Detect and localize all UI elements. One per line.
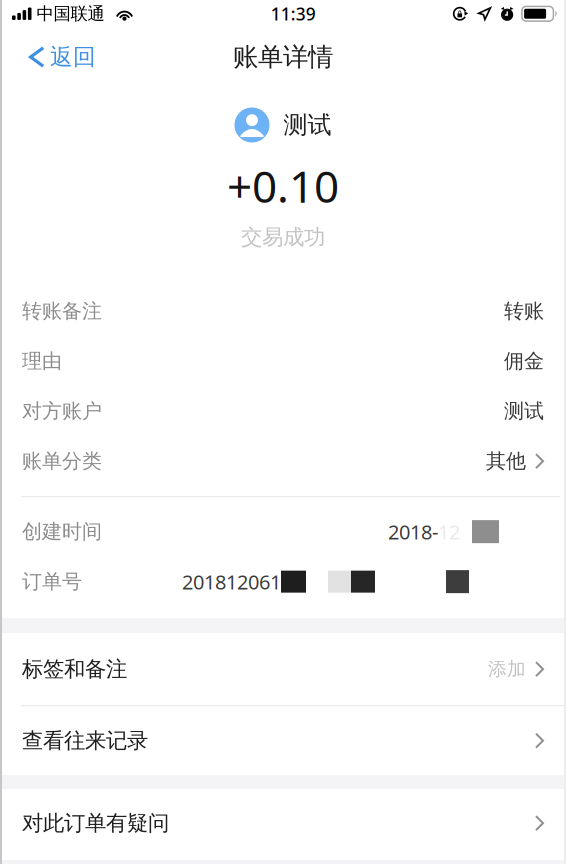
staticText: 对此订单有疑问 [22,810,169,836]
button[interactable]: 查看往来记录 [0,706,566,775]
button[interactable]: 标签和备注 [0,633,566,705]
button[interactable]: 返回 [0,35,110,79]
staticText: 12 [438,518,460,545]
staticText: 测试 [283,110,331,140]
staticText: 标签和备注 [22,656,127,682]
staticText: 订单号 [22,569,82,594]
staticText: 创建时间 [22,519,102,544]
staticText: 对方账户 [22,399,102,423]
staticText: 账单分类 [22,449,102,473]
staticText: +0.10 [227,156,339,215]
staticText: 测试 [504,399,544,423]
button[interactable]: 对此订单有疑问 [0,789,566,857]
staticText: 添加 [488,658,526,681]
staticText: 201812061 [182,568,281,595]
staticText: 2018- [388,518,438,545]
staticText: 查看往来记录 [22,727,148,754]
staticText: 转账 [504,299,544,323]
staticText: 中国联通 [36,3,104,24]
staticText: 其他 [486,449,526,473]
staticText: 交易成功 [241,224,325,250]
staticText: 理由 [22,349,62,373]
staticText: 返回 [50,43,96,71]
staticText: 11:39 [271,2,316,25]
staticText: 转账备注 [22,299,102,323]
staticText: 佣金 [504,349,544,373]
staticText: 账单详情 [233,41,333,72]
